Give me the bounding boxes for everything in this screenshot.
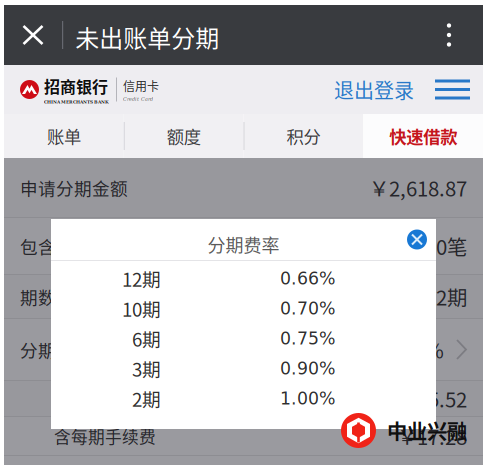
button[interactable]: Close rate sheet xyxy=(399,221,435,257)
staticText: 12期 xyxy=(425,282,467,311)
staticText: 10期 xyxy=(122,295,161,322)
staticText: 退出登录 xyxy=(334,75,414,104)
button[interactable]: 退出登录 xyxy=(326,65,422,114)
staticText: 1.00% xyxy=(280,388,335,409)
staticText: 12期 xyxy=(122,265,161,292)
staticText: ￥17.28 xyxy=(397,421,467,451)
staticText: 含每期手续费 xyxy=(54,424,156,448)
button[interactable]: More options xyxy=(415,5,483,65)
staticText: 招商银行 xyxy=(44,74,108,98)
button[interactable]: 积分 xyxy=(243,114,363,158)
button[interactable]: 额度 xyxy=(124,114,244,158)
staticText: 包含消费笔数 xyxy=(20,233,128,259)
staticText: 快速借款 xyxy=(389,123,457,149)
button[interactable]: Menu xyxy=(422,65,483,114)
button[interactable]: 账单 xyxy=(4,114,124,158)
staticText: 积分 xyxy=(286,123,320,149)
button[interactable]: Close xyxy=(4,5,62,65)
staticText: 0.90% xyxy=(280,358,335,379)
staticText: 0.66% xyxy=(386,335,444,364)
staticText: 中业兴融 xyxy=(387,416,467,445)
staticText: 未出账单分期 xyxy=(75,20,219,54)
staticText: 信用卡 xyxy=(123,77,159,94)
staticText: ￥2,618.87 xyxy=(369,173,467,202)
staticText: 0.70% xyxy=(280,298,335,319)
staticText: 0.66% xyxy=(280,268,335,289)
staticText: 0.75% xyxy=(280,328,335,349)
staticText: CHINA MERCHANTS BANK xyxy=(44,100,109,105)
staticText: 3期 xyxy=(132,355,161,382)
staticText: 额度 xyxy=(167,123,201,149)
staticText: 分期费率 xyxy=(207,231,279,258)
staticText: 6期 xyxy=(132,325,161,352)
staticText: 10笔 xyxy=(425,231,467,261)
staticText: 2期 xyxy=(132,385,161,412)
staticText: 分期费率 xyxy=(20,337,92,362)
staticText: 申请分期金额 xyxy=(20,175,128,200)
staticText: Credit Card xyxy=(123,96,153,102)
staticText: ￥5.52 xyxy=(408,384,467,413)
staticText: 账单 xyxy=(47,123,81,149)
button[interactable]: 快速借款 xyxy=(363,114,483,158)
staticText: 期数 xyxy=(20,284,56,309)
